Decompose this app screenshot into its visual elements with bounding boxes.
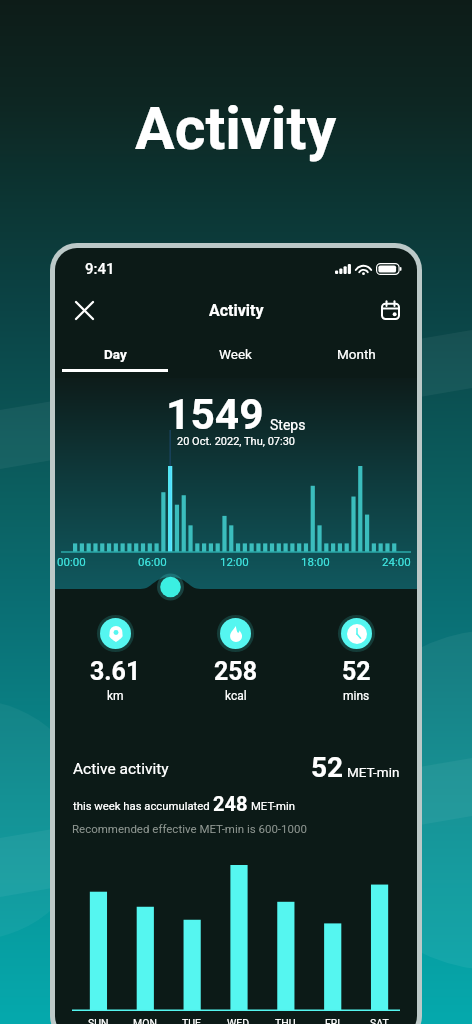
staticText: this week has accumulated xyxy=(73,800,210,813)
staticText: Day xyxy=(104,346,127,362)
button[interactable]: Week xyxy=(175,344,296,376)
staticText: Recommended effective MET-min is 600-100… xyxy=(72,822,307,835)
staticText: MON xyxy=(133,1017,157,1024)
staticText: MET-min xyxy=(251,800,295,813)
staticText: Week xyxy=(219,346,252,362)
button[interactable]: 52 xyxy=(296,618,417,703)
staticText: 00:00 xyxy=(57,555,86,568)
staticText: TUE xyxy=(182,1017,202,1024)
staticText: 18:00 xyxy=(301,555,330,568)
staticText: WED xyxy=(227,1017,250,1024)
staticText: MET-min xyxy=(347,764,400,780)
staticText: km xyxy=(107,689,124,703)
staticText: SUN xyxy=(88,1017,109,1024)
staticText: 1549 xyxy=(166,390,264,440)
staticText: 3.61 xyxy=(90,657,141,686)
staticText: 258 xyxy=(214,657,258,686)
staticText: SAT xyxy=(370,1017,389,1024)
button[interactable]: 258 xyxy=(175,618,296,703)
staticText: Activity xyxy=(135,94,337,163)
staticText: kcal xyxy=(225,689,247,703)
button[interactable]: Day xyxy=(55,344,175,376)
staticText: Active activity xyxy=(73,760,169,778)
staticText: 12:00 xyxy=(220,555,249,568)
staticText: 20 Oct. 2022, Thu, 07:30 xyxy=(177,435,296,448)
staticText: Activity xyxy=(209,301,264,320)
staticText: THU xyxy=(275,1017,296,1024)
staticText: 52 xyxy=(342,657,371,686)
button[interactable]: Calendar xyxy=(370,292,410,328)
staticText: 24:00 xyxy=(382,555,411,568)
button[interactable]: Close xyxy=(64,292,104,328)
staticText: 06:00 xyxy=(138,555,167,568)
staticText: 248 xyxy=(213,792,248,815)
staticText: Month xyxy=(337,346,376,362)
staticText: FRI xyxy=(325,1017,341,1024)
staticText: 9:41 xyxy=(85,260,115,278)
staticText: Steps xyxy=(270,417,306,433)
staticText: mins xyxy=(343,689,370,703)
button[interactable]: 3.61 xyxy=(55,618,175,703)
staticText: 52 xyxy=(311,751,344,784)
button[interactable]: Month xyxy=(296,344,417,376)
